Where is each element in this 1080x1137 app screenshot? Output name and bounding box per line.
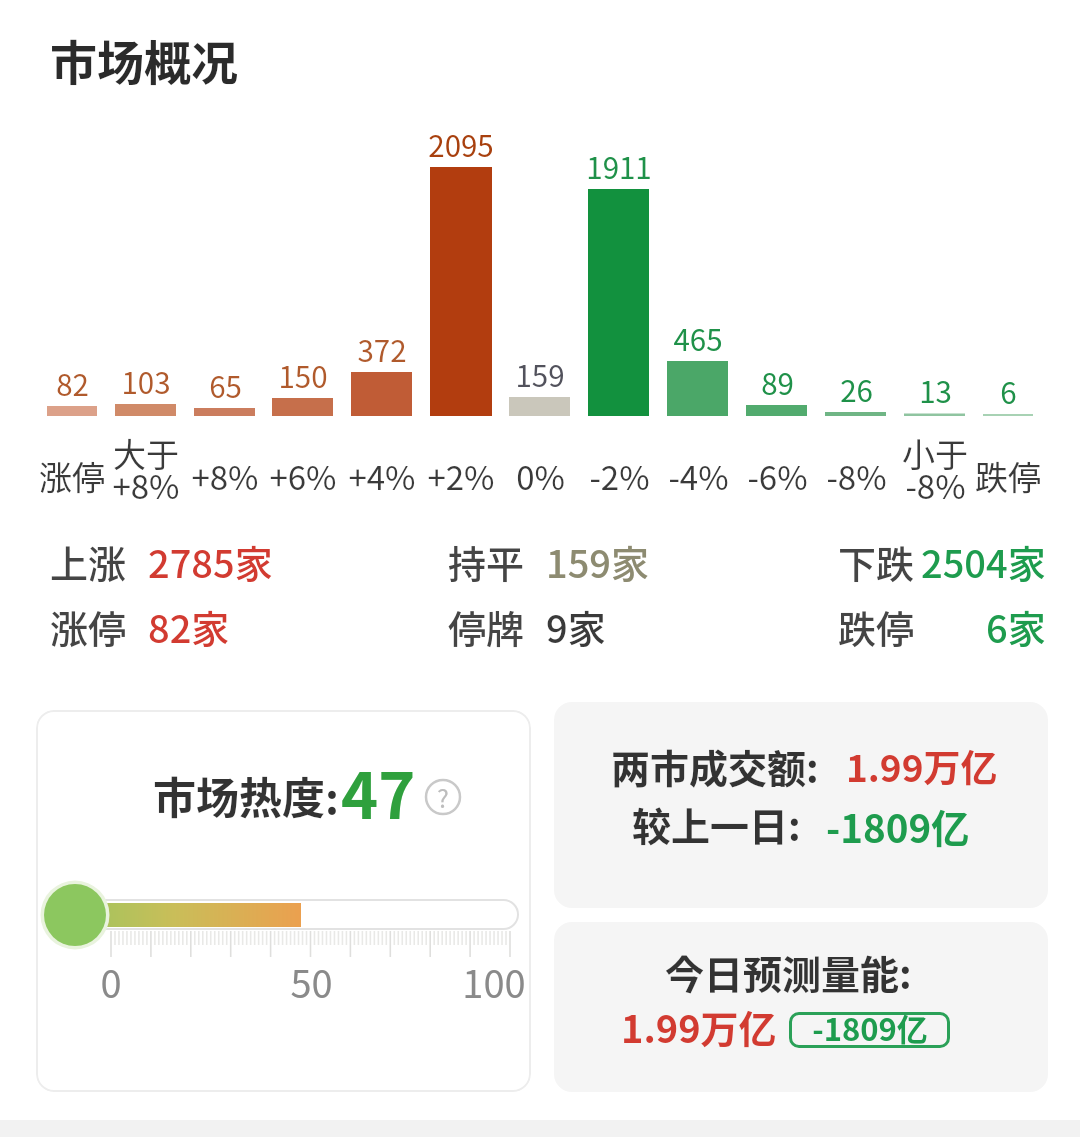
staticText: -8% xyxy=(905,461,966,509)
staticText: +8% xyxy=(191,452,259,500)
staticText: +2% xyxy=(427,452,495,500)
staticText: 跌停 xyxy=(975,452,1041,500)
staticText: 1.99万亿 xyxy=(621,999,777,1054)
staticText: 0 xyxy=(100,954,122,1009)
staticText: 13 xyxy=(919,369,952,412)
staticText: ? xyxy=(437,779,449,815)
button[interactable] xyxy=(554,702,1048,908)
staticText: 6家 xyxy=(986,599,1046,654)
button[interactable]: 下跌 xyxy=(838,534,915,589)
button[interactable]: 跌停 xyxy=(838,599,915,654)
staticText: 2095 xyxy=(428,123,494,166)
staticText: 市场热度: xyxy=(153,764,339,826)
staticText: 较上一日: xyxy=(632,796,801,852)
staticText: 市场概况 xyxy=(50,25,238,93)
staticText: 1.99万亿 xyxy=(846,739,998,793)
staticText: 372 xyxy=(357,328,407,371)
staticText: 103 xyxy=(121,360,171,403)
staticText: -1809亿 xyxy=(812,1005,928,1050)
staticText: -6% xyxy=(747,452,808,500)
staticText: 82 xyxy=(56,362,89,405)
staticText: 下跌 xyxy=(838,534,915,589)
staticText: 50 xyxy=(290,954,333,1009)
staticText: 465 xyxy=(673,317,723,360)
staticText: -8% xyxy=(826,452,887,500)
staticText: 两市成交额: xyxy=(611,738,819,794)
staticText: 今日预测量能: xyxy=(665,944,912,1000)
button[interactable]: 停牌 xyxy=(448,599,525,654)
staticText: 小于 xyxy=(902,429,968,477)
staticText: 2504家 xyxy=(921,534,1046,589)
staticText: 150 xyxy=(278,354,328,397)
button[interactable]: 市场概况 xyxy=(50,25,238,93)
staticText: 跌停 xyxy=(838,599,915,654)
staticText: -1809亿 xyxy=(826,798,970,854)
staticText: 0% xyxy=(516,452,565,500)
staticText: +4% xyxy=(348,452,416,500)
staticText: 停牌 xyxy=(448,599,525,654)
staticText: 82家 xyxy=(148,599,230,654)
staticText: -4% xyxy=(668,452,729,500)
staticText: 159家 xyxy=(546,534,649,589)
staticText: 6 xyxy=(1000,370,1017,413)
staticText: +8% xyxy=(112,461,180,509)
staticText: 上涨 xyxy=(50,534,127,589)
button[interactable] xyxy=(789,1012,950,1048)
staticText: 26 xyxy=(840,368,873,411)
staticText: 65 xyxy=(209,364,242,407)
staticText: 涨停 xyxy=(39,452,105,500)
staticText: 涨停 xyxy=(50,599,127,654)
staticText: -2% xyxy=(589,452,650,500)
button[interactable] xyxy=(36,710,531,1092)
button[interactable]: 持平 xyxy=(448,534,525,589)
staticText: 持平 xyxy=(448,534,525,589)
staticText: +6% xyxy=(269,452,337,500)
staticText: 2785家 xyxy=(148,534,273,589)
button[interactable]: 上涨 xyxy=(50,534,127,589)
staticText: 9家 xyxy=(546,599,606,654)
staticText: 1911 xyxy=(586,145,652,188)
staticText: 47 xyxy=(341,746,416,837)
button[interactable]: 涨停 xyxy=(50,599,127,654)
staticText: 89 xyxy=(761,361,794,404)
staticText: 159 xyxy=(515,353,565,396)
button[interactable] xyxy=(554,922,1048,1092)
staticText: 100 xyxy=(462,954,526,1009)
staticText: 大于 xyxy=(113,429,179,477)
